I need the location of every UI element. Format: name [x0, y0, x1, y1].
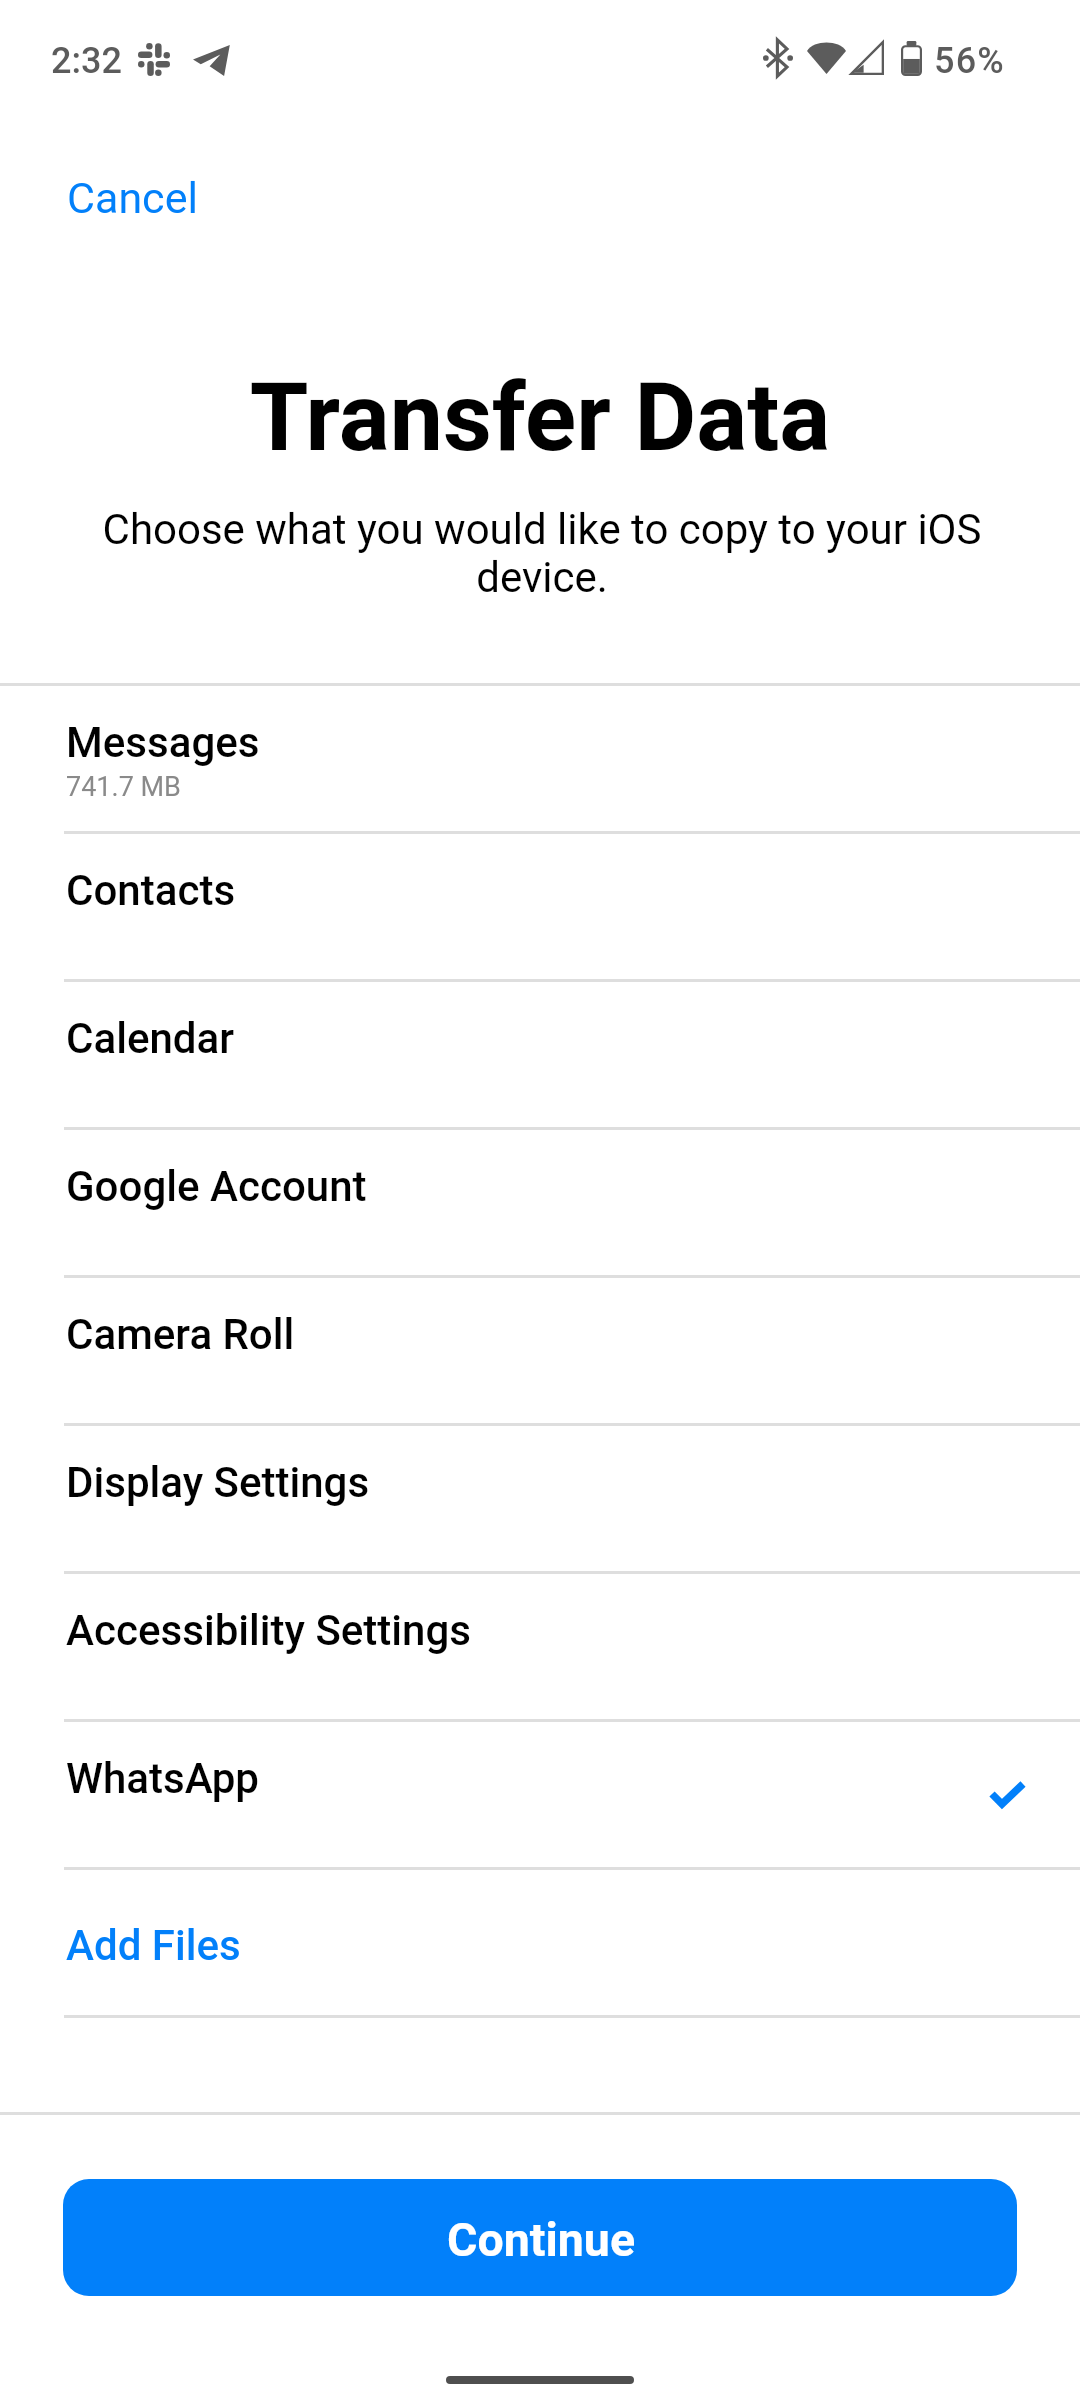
button[interactable]: Camera Roll [0, 1276, 1080, 1424]
staticText: Contacts [66, 866, 236, 915]
staticText: Camera Roll [66, 1310, 295, 1359]
staticText: 2:32 [51, 40, 122, 82]
button[interactable]: Contacts [0, 832, 1080, 980]
staticText: Display Settings [66, 1458, 370, 1507]
staticText: Cancel [67, 173, 198, 223]
staticText: Messages [66, 718, 260, 767]
other: Battery 56 percent [901, 41, 922, 76]
other: Wi-Fi full signal [807, 41, 846, 74]
other: Slack notification [138, 43, 170, 76]
button[interactable]: Display Settings [0, 1424, 1080, 1572]
staticText: Calendar [66, 1014, 235, 1063]
staticText: Add Files [66, 1921, 241, 1970]
other: Telegram notification [193, 45, 230, 76]
button[interactable]: Calendar [0, 980, 1080, 1128]
staticText: Continue [447, 2213, 636, 2267]
button[interactable]: Google Account [0, 1128, 1080, 1276]
staticText: Accessibility Settings [66, 1606, 471, 1655]
button[interactable]: Continue [63, 2179, 1017, 2296]
staticText: Google Account [66, 1162, 367, 1211]
staticText: Choose what you would like to copy to yo… [94, 505, 990, 603]
other: Bluetooth on [763, 39, 793, 77]
button[interactable]: Messages [0, 684, 1080, 832]
button[interactable]: Accessibility Settings [0, 1572, 1080, 1720]
other: Selected [986, 1778, 1028, 1812]
button[interactable]: Add Files [0, 1868, 1080, 2016]
other: Mobile signal [850, 41, 884, 75]
button[interactable]: WhatsApp [0, 1720, 1080, 1868]
staticText: Transfer Data [0, 362, 1080, 473]
button[interactable]: Cancel [53, 161, 212, 235]
staticText: 56% [934, 40, 1005, 82]
staticText: 741.7 MB [66, 771, 181, 803]
staticText: WhatsApp [66, 1754, 259, 1803]
